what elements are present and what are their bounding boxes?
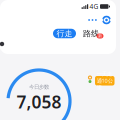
button[interactable]: 路线 xyxy=(81,29,101,38)
button[interactable]: 行走 xyxy=(53,29,76,38)
staticText: 行走 xyxy=(56,29,72,38)
staticText: 路线 xyxy=(83,29,99,38)
staticText: 4G xyxy=(89,2,98,11)
staticText: 7,058 xyxy=(16,90,61,113)
button[interactable]: More xyxy=(88,15,97,24)
button[interactable]: Locate me xyxy=(102,15,111,24)
staticText: 今日步数 xyxy=(29,84,49,90)
staticText: 一天走通10公里 xyxy=(97,71,113,91)
button[interactable]: 一天走通10公里 xyxy=(95,76,114,85)
staticText: 新 xyxy=(98,33,102,38)
